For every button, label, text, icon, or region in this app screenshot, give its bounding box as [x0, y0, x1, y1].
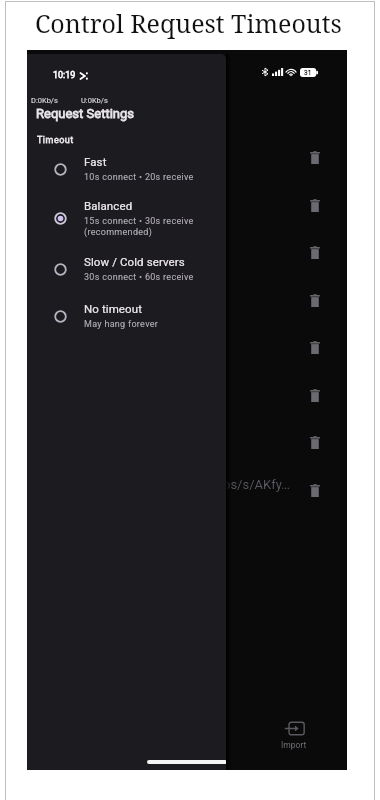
button[interactable]: Slow / Cold servers	[31, 251, 226, 287]
button[interactable]: Balanced	[31, 195, 226, 242]
button[interactable]: Delete	[304, 431, 326, 453]
button[interactable]: Delete	[304, 241, 326, 263]
staticText: 15s connect • 30s receive	[84, 216, 194, 227]
staticText: D:0Kb/s	[31, 96, 58, 105]
button[interactable]: Delete	[304, 146, 326, 168]
staticText: Fast	[84, 155, 107, 168]
button[interactable]: No timeout	[31, 298, 226, 334]
button[interactable]: Delete	[304, 336, 326, 358]
staticText: Import	[281, 740, 307, 750]
staticText: 10s connect • 20s receive	[84, 172, 194, 183]
staticText: Slow / Cold servers	[84, 255, 185, 268]
staticText: U:0Kb/s	[81, 96, 108, 105]
staticText: No timeout	[84, 302, 143, 315]
button[interactable]: Fast	[31, 151, 226, 187]
staticText: 30s connect • 60s receive	[84, 272, 194, 283]
staticText: Request Settings	[36, 106, 135, 121]
staticText: (recommended)	[84, 227, 153, 238]
staticText: 31	[304, 69, 312, 77]
staticText: Timeout	[37, 135, 74, 146]
staticText: Balanced	[84, 199, 133, 212]
staticText: Control Request Timeouts	[35, 6, 342, 40]
button[interactable]: Delete	[304, 194, 326, 216]
staticText: May hang forever	[84, 319, 159, 330]
staticText: os/s/AKfy…	[223, 477, 290, 492]
button[interactable]: Import	[243, 718, 345, 750]
button[interactable]: Delete	[304, 384, 326, 406]
button[interactable]: Delete	[304, 479, 326, 501]
staticText: 10:19	[53, 70, 76, 81]
button[interactable]: Delete	[304, 289, 326, 311]
